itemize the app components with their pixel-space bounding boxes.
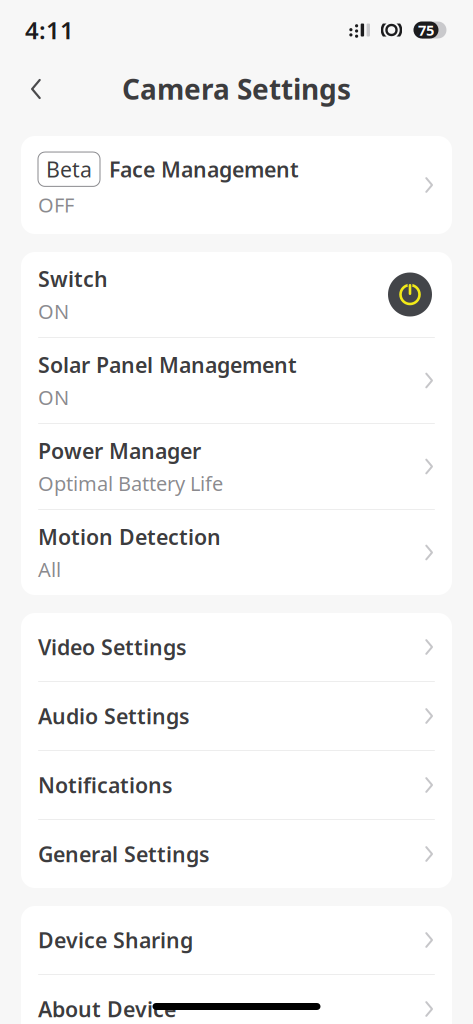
staticText: Video Settings — [38, 633, 187, 661]
button[interactable]: Power Manager — [21, 424, 452, 509]
staticText: General Settings — [38, 840, 210, 868]
staticText: Device Sharing — [38, 926, 193, 954]
staticText: Solar Panel Management — [38, 351, 297, 379]
button[interactable]: Video Settings — [21, 613, 452, 681]
button[interactable]: Beta — [21, 136, 452, 234]
button[interactable]: Device Sharing — [21, 906, 452, 974]
button[interactable]: Solar Panel Management — [21, 338, 452, 423]
staticText: Audio Settings — [38, 702, 190, 730]
button[interactable]: Notifications — [21, 751, 452, 819]
staticText: Face Management — [109, 155, 299, 183]
staticText: About Device — [38, 995, 176, 1023]
button[interactable]: Motion Detection — [21, 510, 452, 595]
staticText: Switch — [38, 265, 108, 293]
button[interactable]: About Device — [21, 975, 452, 1024]
staticText: Camera Settings — [122, 70, 351, 108]
staticText: ON — [38, 384, 69, 410]
button[interactable]: Switch — [21, 252, 452, 337]
staticText: All — [38, 556, 61, 582]
button[interactable]: General Settings — [21, 820, 452, 888]
button[interactable]: Audio Settings — [21, 682, 452, 750]
staticText: Notifications — [38, 771, 173, 799]
staticText: 4:11 — [25, 14, 74, 46]
staticText: Power Manager — [38, 437, 201, 465]
button[interactable]: Back — [14, 67, 58, 111]
staticText: ON — [38, 298, 69, 324]
staticText: Optimal Battery Life — [38, 470, 223, 496]
staticText: Beta — [46, 155, 92, 183]
staticText: Motion Detection — [38, 523, 221, 551]
staticText: 75 — [418, 20, 434, 40]
staticText: OFF — [38, 191, 74, 218]
